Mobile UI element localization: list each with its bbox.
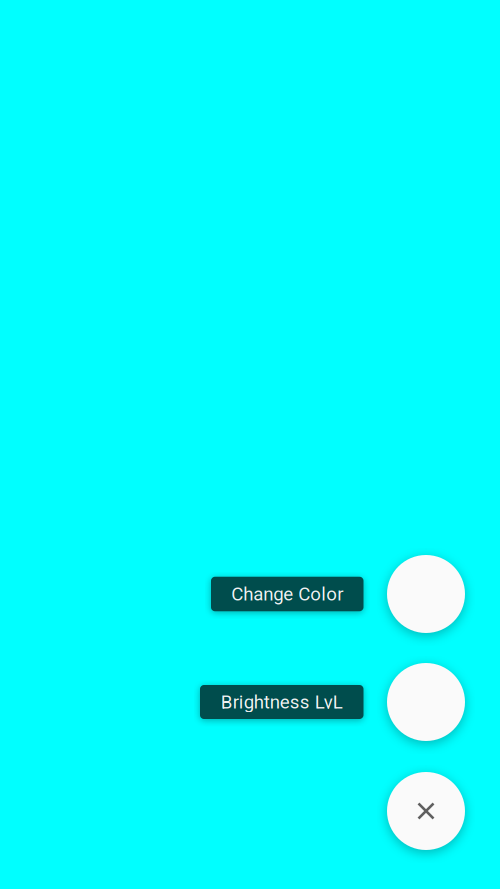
button[interactable]: Brightness Level [387,663,465,741]
staticText: Change Color [231,583,343,605]
button[interactable]: Close menu [387,772,465,850]
button[interactable]: Change Color [211,577,363,611]
button[interactable]: Change Color [387,555,465,633]
button[interactable]: Brightness LvL [200,685,363,719]
staticText: Brightness LvL [221,691,343,713]
